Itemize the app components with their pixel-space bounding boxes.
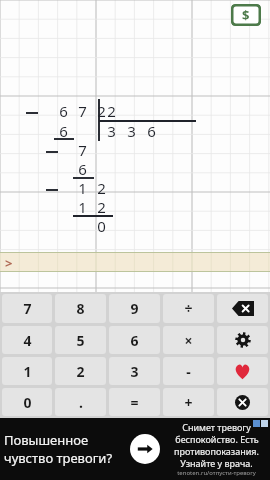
button[interactable]: 2: [55, 357, 106, 385]
staticText: 2: [107, 101, 116, 121]
staticText: 6: [78, 159, 87, 179]
button[interactable]: Повышенное: [0, 418, 270, 480]
staticText: беспокойство. Есть: [175, 433, 259, 445]
staticText: 7: [78, 140, 87, 160]
button[interactable]: ÷: [163, 294, 214, 323]
staticText: Узнайте у врача.: [180, 457, 253, 469]
staticText: 2: [97, 178, 106, 198]
button[interactable]: =: [109, 388, 160, 416]
staticText: 6: [59, 101, 68, 121]
staticText: .: [79, 393, 83, 412]
button[interactable]: Backspace: [217, 294, 268, 323]
button[interactable]: Settings: [217, 326, 268, 354]
staticText: 9: [130, 299, 139, 318]
button[interactable]: Favorite: [217, 357, 268, 385]
staticText: 3: [127, 121, 136, 141]
staticText: 2: [97, 101, 106, 121]
staticText: 2: [76, 362, 85, 381]
staticText: 6: [130, 331, 139, 350]
staticText: 0: [97, 216, 106, 236]
staticText: 8: [76, 299, 85, 318]
button[interactable]: Remove ads: [231, 4, 261, 26]
button[interactable]: ×: [163, 326, 214, 354]
staticText: tenoten.ru/отпусти-тревогу: [177, 469, 256, 477]
staticText: 1: [78, 178, 87, 198]
staticText: 5: [76, 331, 85, 350]
staticText: -: [186, 362, 191, 381]
staticText: ×: [184, 331, 193, 350]
staticText: 1: [78, 197, 87, 217]
staticText: 2: [97, 197, 106, 217]
button[interactable]: >: [0, 252, 270, 272]
button[interactable]: 7: [2, 294, 52, 323]
button[interactable]: 3: [109, 357, 160, 385]
button[interactable]: 6: [109, 326, 160, 354]
staticText: 7: [78, 101, 87, 121]
staticText: ÷: [184, 299, 193, 318]
staticText: 7: [23, 299, 32, 318]
button[interactable]: 4: [2, 326, 52, 354]
staticText: =: [130, 393, 139, 412]
staticText: противопоказания.: [174, 445, 259, 457]
staticText: 1: [23, 362, 32, 381]
button[interactable]: Close keyboard: [217, 388, 268, 416]
staticText: 3: [107, 121, 116, 141]
button[interactable]: -: [163, 357, 214, 385]
staticText: 6: [59, 121, 68, 141]
button[interactable]: .: [55, 388, 106, 416]
staticText: Повышенное: [4, 431, 89, 449]
button[interactable]: +: [163, 388, 214, 416]
staticText: >: [5, 254, 13, 272]
staticText: $: [242, 6, 250, 24]
staticText: чувство тревоги?: [4, 449, 113, 467]
staticText: Снимет тревогу: [182, 421, 251, 433]
staticText: 4: [23, 331, 32, 350]
button[interactable]: 8: [55, 294, 106, 323]
staticText: 6: [147, 121, 156, 141]
staticText: 0: [23, 393, 32, 412]
staticText: 3: [130, 362, 139, 381]
button[interactable]: 9: [109, 294, 160, 323]
button[interactable]: 5: [55, 326, 106, 354]
button[interactable]: 0: [2, 388, 52, 416]
button[interactable]: 1: [2, 357, 52, 385]
staticText: +: [184, 393, 193, 412]
